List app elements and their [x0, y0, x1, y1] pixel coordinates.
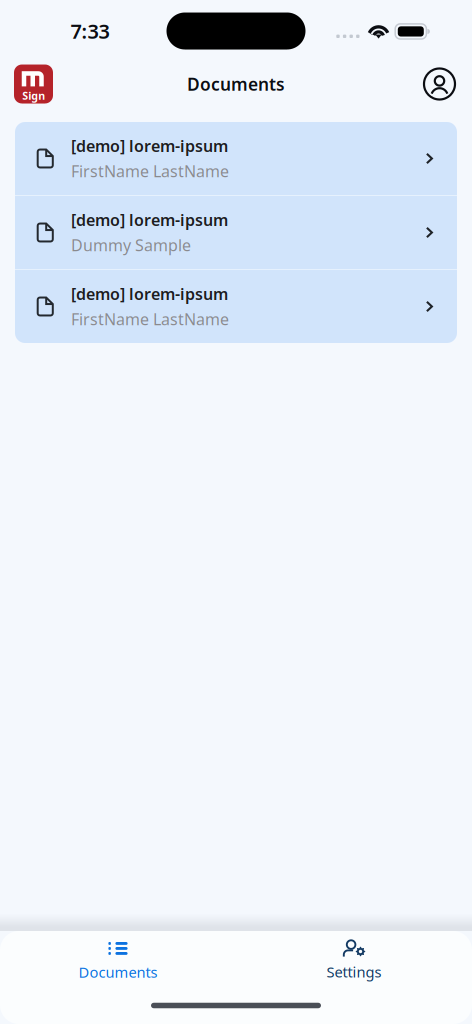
- button[interactable]: [demo] lorem-ipsum: [15, 122, 457, 195]
- button[interactable]: mSign: [0, 64, 53, 103]
- staticText: FirstName LastName: [71, 160, 229, 182]
- staticText: 7:33: [70, 18, 109, 44]
- staticText: Documents: [78, 962, 157, 982]
- staticText: [demo] lorem-ipsum: [71, 135, 228, 156]
- button[interactable]: Documents: [0, 931, 236, 992]
- staticText: Settings: [326, 962, 381, 981]
- staticText: Documents: [187, 72, 285, 95]
- staticText: Dummy Sample: [71, 234, 191, 256]
- staticText: Sign: [22, 89, 45, 103]
- button[interactable]: [demo] lorem-ipsum: [15, 270, 457, 343]
- staticText: FirstName LastName: [71, 308, 229, 330]
- button[interactable]: Settings: [236, 931, 472, 992]
- staticText: [demo] lorem-ipsum: [71, 283, 228, 304]
- staticText: [demo] lorem-ipsum: [71, 209, 228, 230]
- button[interactable]: Account: [424, 68, 472, 99]
- button[interactable]: [demo] lorem-ipsum: [15, 196, 457, 269]
